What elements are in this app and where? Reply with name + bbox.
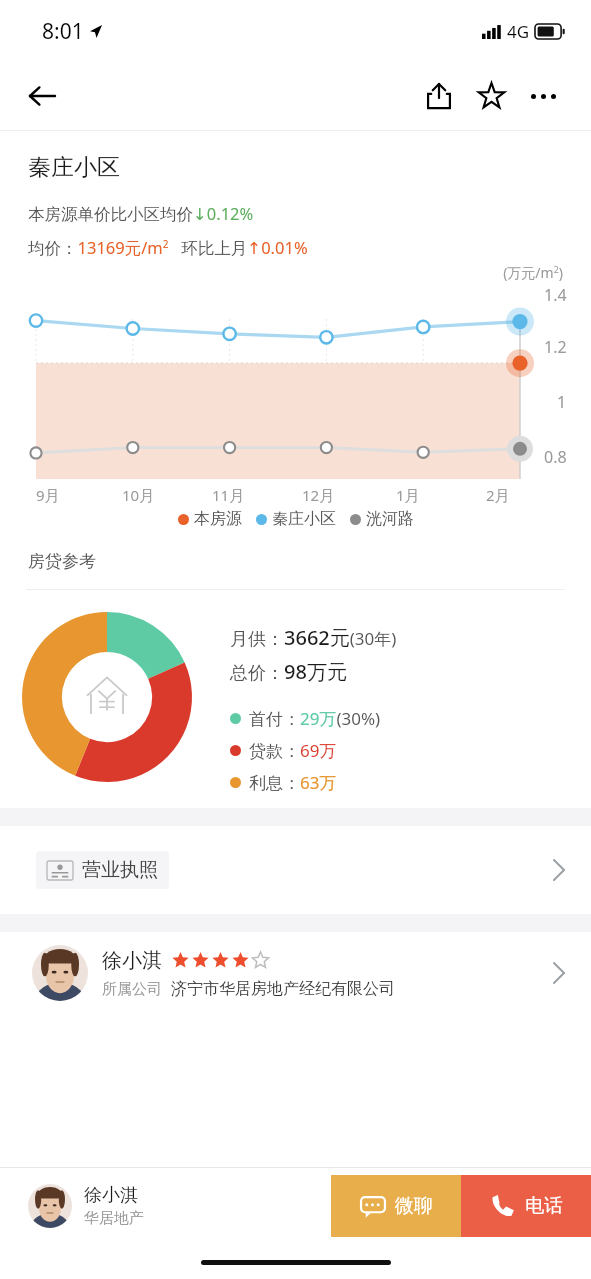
staticText: 本房源 <box>194 509 242 529</box>
button[interactable]: 营业执照 <box>0 826 591 914</box>
staticText: 月供：3662元(30年) <box>230 624 397 651</box>
staticText: 均价：13169元/m2 环比上月↑0.01% <box>28 236 308 259</box>
staticText: 营业执照 <box>82 858 158 882</box>
staticText: 0.8 <box>544 446 567 468</box>
staticText: 4G <box>507 20 530 43</box>
staticText: 洸河路 <box>366 509 414 529</box>
staticText: 1 <box>557 391 567 413</box>
staticText: 1.2 <box>544 336 567 358</box>
button[interactable]: Favorite <box>465 70 517 122</box>
staticText: 1月 <box>396 485 420 505</box>
staticText: 8:01 <box>42 17 84 46</box>
button[interactable]: More options <box>517 70 569 122</box>
staticText: 电话 <box>525 1194 563 1218</box>
staticText: 总价：98万元 <box>230 658 347 685</box>
staticText: 首付：29万(30%) <box>249 707 381 730</box>
button[interactable]: 电话 <box>461 1175 591 1237</box>
staticText: 贷款：69万 <box>249 739 337 762</box>
staticText: 微聊 <box>395 1194 433 1218</box>
button[interactable]: Back <box>16 70 68 122</box>
staticText: 9月 <box>36 485 60 505</box>
staticText: 10月 <box>122 485 155 505</box>
staticText: 秦庄小区 <box>272 509 336 529</box>
button[interactable]: 微聊 <box>331 1175 461 1237</box>
staticText: 徐小淇 <box>102 948 162 973</box>
staticText: 1.4 <box>544 284 567 306</box>
staticText: 济宁市华居房地产经纪有限公司 <box>171 979 395 999</box>
staticText: 12月 <box>302 485 335 505</box>
staticText: 徐小淇 <box>84 1184 138 1207</box>
button[interactable]: Share <box>413 70 465 122</box>
staticText: 2月 <box>486 485 510 505</box>
staticText: 本房源单价比小区均价↓0.12% <box>28 202 254 225</box>
staticText: 所属公司 <box>102 980 162 999</box>
staticText: 利息：63万 <box>249 771 337 794</box>
staticText: (万元/m2) <box>503 263 563 282</box>
staticText: 华居地产 <box>84 1209 144 1228</box>
staticText: 房贷参考 <box>28 551 96 572</box>
staticText: 11月 <box>212 485 245 505</box>
staticText: 秦庄小区 <box>28 153 120 182</box>
button[interactable]: 徐小淇 <box>0 932 591 1014</box>
